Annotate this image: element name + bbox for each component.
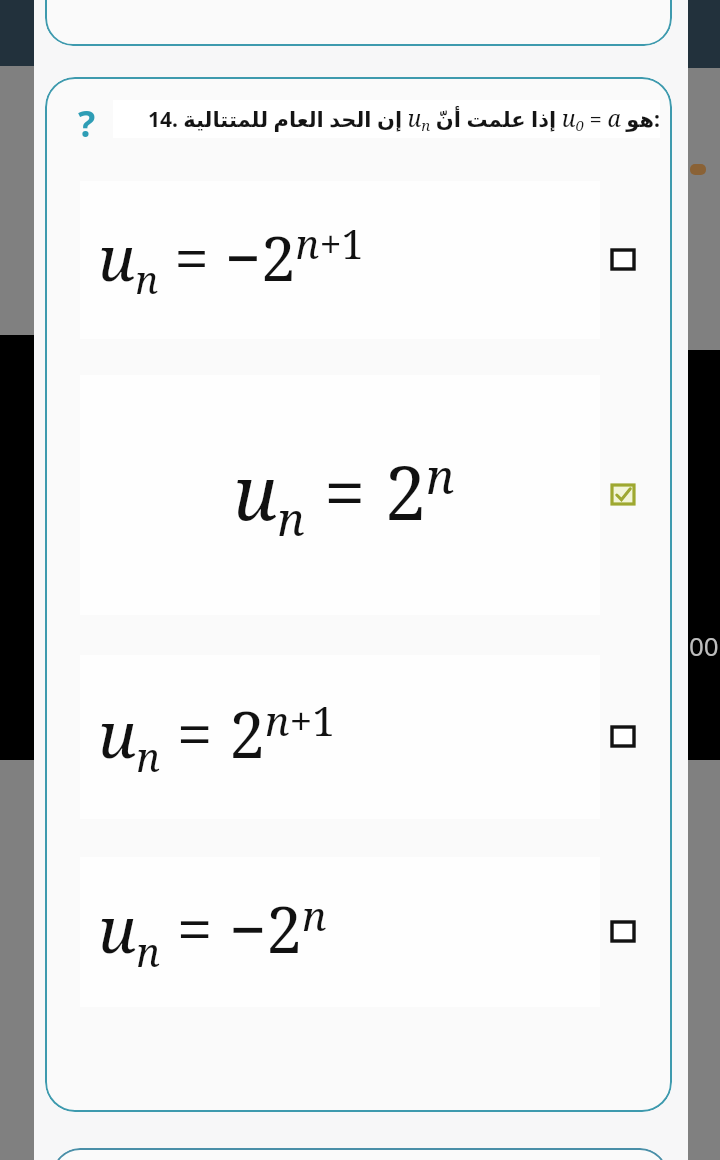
button[interactable]: Selected answer [608,480,638,510]
button[interactable]: Help [67,99,107,139]
staticText: un = −2n+1 [98,215,364,306]
button[interactable]: un = −2n [80,857,672,1007]
button[interactable]: Select answer [608,245,638,275]
staticText: un = 2n [233,441,455,549]
staticText: ? [78,99,96,139]
staticText: 00 [689,628,719,663]
staticText: un = 2n+1 [98,690,336,784]
button[interactable]: un = 2n+1 [80,655,672,819]
staticText: 14. إن الحد العام للمتتالية un إذا علمت … [147,102,660,136]
button[interactable]: Select answer [608,917,638,947]
staticText: un = −2n [98,885,327,979]
button[interactable]: Select answer [608,722,638,752]
button[interactable]: un = −2n+1 [80,181,672,339]
button[interactable]: un = 2n [80,375,672,615]
